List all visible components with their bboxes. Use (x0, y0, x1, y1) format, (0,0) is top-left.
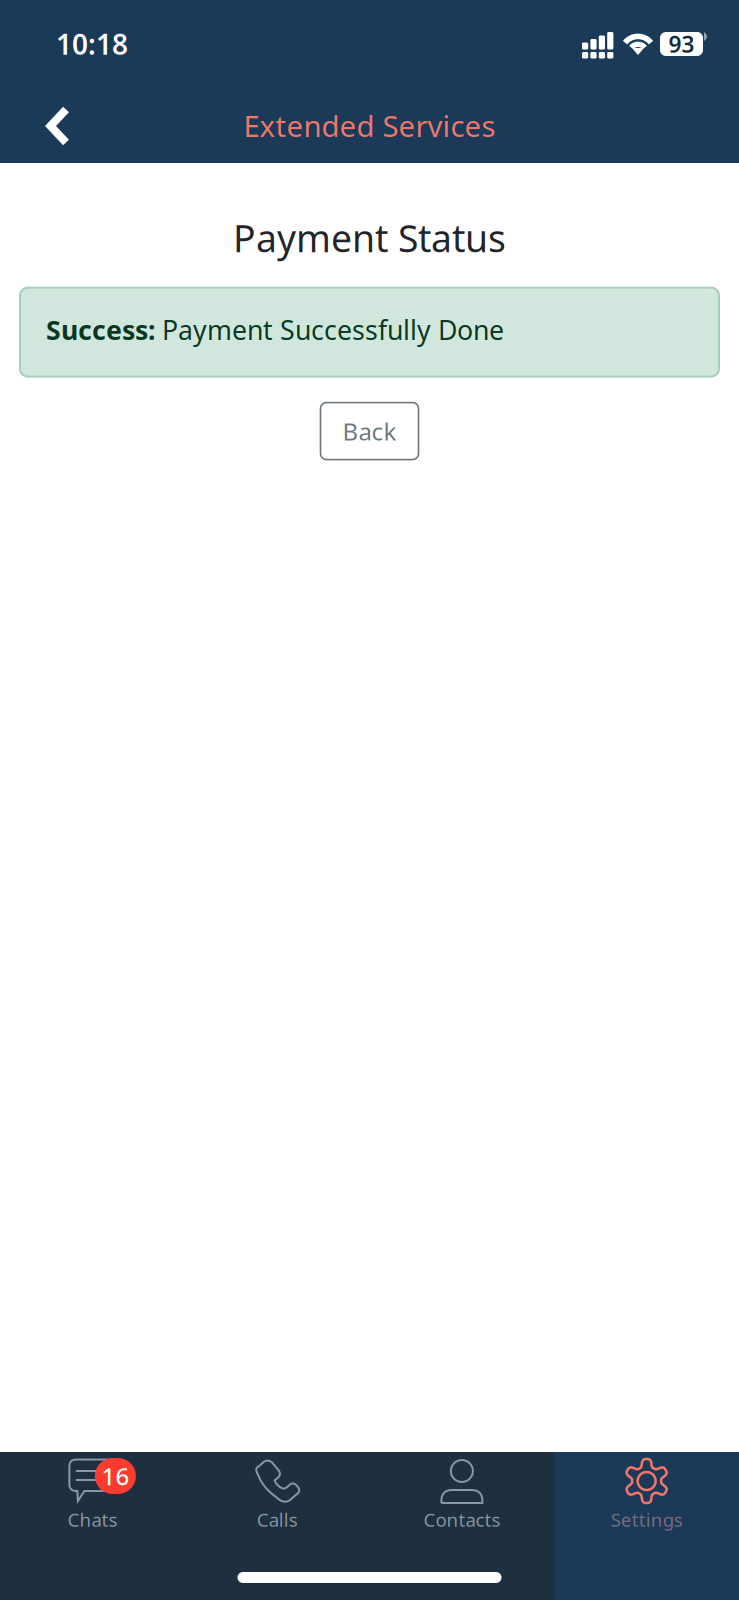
staticText: Calls (257, 1507, 298, 1532)
staticText: Success: (46, 312, 155, 347)
button[interactable]: Contacts (369, 1442, 554, 1552)
button[interactable]: Back (320, 403, 418, 460)
staticText: Chats (67, 1507, 117, 1532)
staticText: Back (342, 415, 396, 447)
button[interactable]: Settings (554, 1442, 739, 1552)
staticText: Contacts (423, 1507, 500, 1532)
staticText: 10:18 (56, 25, 128, 63)
staticText: 93 (668, 29, 694, 59)
staticText: Payment Successfully Done (155, 312, 504, 347)
staticText: 16 (101, 1460, 129, 1492)
button[interactable]: 16 (0, 1442, 185, 1552)
button[interactable]: Calls (185, 1442, 370, 1552)
button[interactable]: Back (0, 88, 96, 163)
staticText: Payment Status (233, 213, 506, 263)
staticText: Extended Services (243, 106, 495, 145)
staticText: Settings (611, 1507, 683, 1532)
